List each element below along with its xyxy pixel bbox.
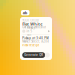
staticText: Market Street, #204: [22, 40, 49, 43]
button[interactable]: Ready in 5 min: [22, 29, 50, 33]
staticText: Pickup at 3:40 PM: [22, 36, 48, 40]
staticText: YOUR ORDER: [22, 19, 39, 22]
staticText: ab: [23, 10, 28, 15]
staticText: Generate QR: [24, 53, 43, 57]
staticText: Flat White: [22, 21, 42, 26]
staticText: View receipt: [22, 43, 39, 47]
staticText: Ready in 5 min: [27, 26, 35, 36]
button[interactable]: More options: [45, 53, 50, 58]
button[interactable]: View receipt: [22, 43, 39, 47]
button[interactable]: App badge: [21, 10, 29, 15]
button[interactable]: Generate QR: [22, 52, 45, 58]
staticText: Oat milk, extra shot: [22, 25, 46, 29]
